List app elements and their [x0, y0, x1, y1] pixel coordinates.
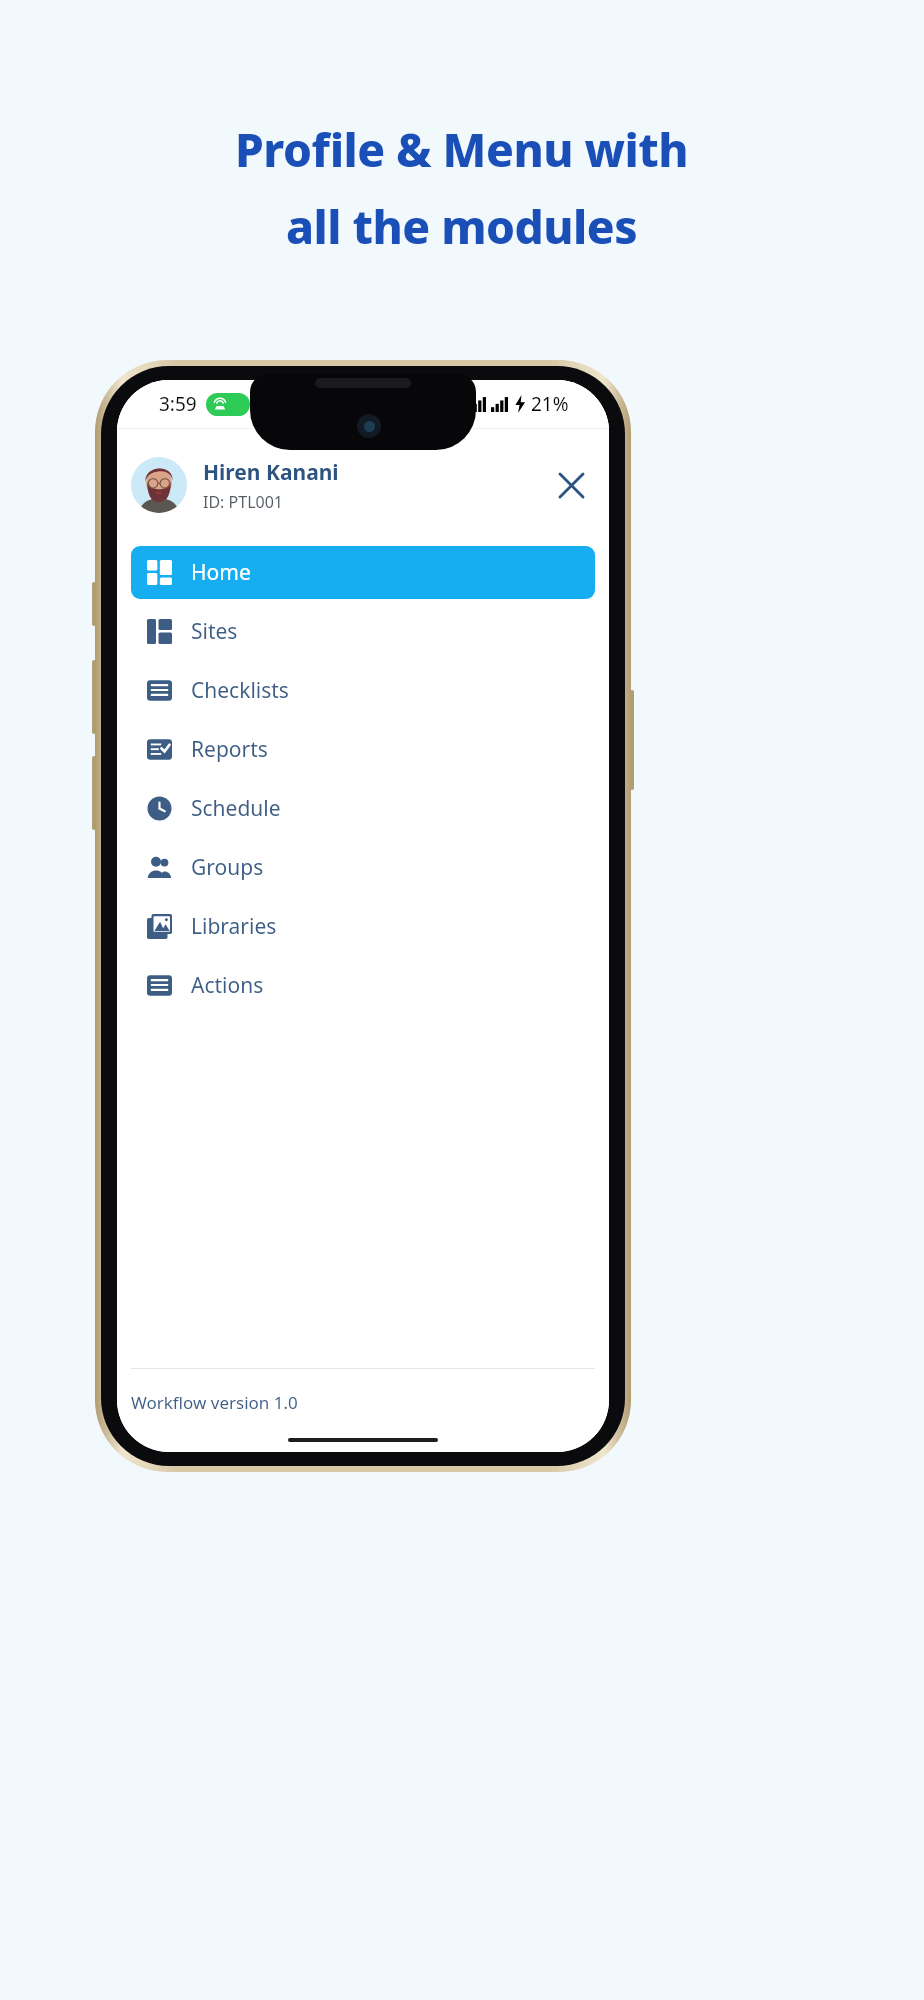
staticText: ID: PTL001 [203, 491, 283, 513]
button[interactable]: Schedule [131, 782, 595, 835]
button[interactable]: Checklists [131, 664, 595, 717]
staticText: 21% [531, 391, 569, 417]
button[interactable]: Libraries [131, 900, 595, 953]
button[interactable]: Groups [131, 841, 595, 894]
staticText: Hiren Kanani [203, 458, 339, 487]
button[interactable]: Home [131, 546, 595, 599]
staticText: Home [191, 558, 251, 587]
button[interactable]: Close [549, 463, 593, 507]
staticText: Actions [191, 971, 264, 1000]
staticText: Groups [191, 853, 264, 882]
button[interactable]: Actions [131, 959, 595, 1012]
staticText: Libraries [191, 912, 277, 941]
staticText: Schedule [191, 794, 281, 823]
staticText: 3:59 [159, 391, 197, 417]
button[interactable]: Sites [131, 605, 595, 658]
staticText: Profile & Menu with [235, 118, 689, 181]
button[interactable]: Reports [131, 723, 595, 776]
staticText: Reports [191, 735, 268, 764]
button[interactable]: Hiren Kanani [117, 457, 609, 513]
staticText: all the modules [286, 195, 638, 258]
staticText: Sites [191, 617, 238, 646]
staticText: Workflow version 1.0 [131, 1391, 298, 1414]
staticText: Checklists [191, 676, 289, 705]
